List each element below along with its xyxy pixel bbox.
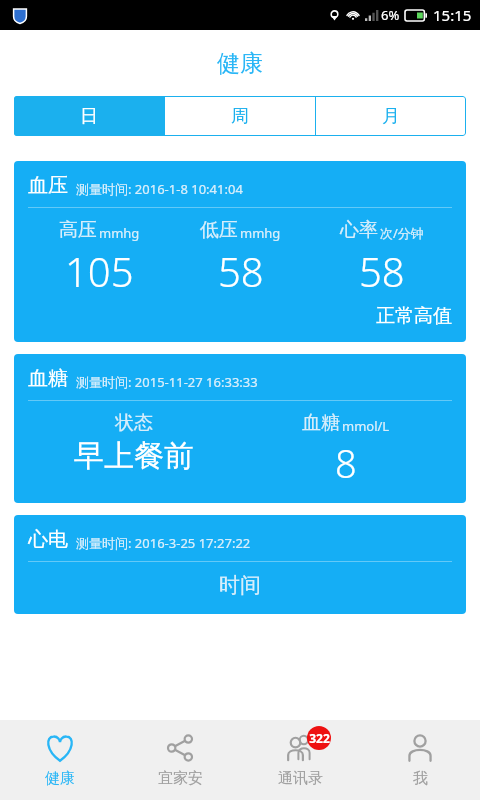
button[interactable]: 健康: [0, 720, 120, 800]
staticText: 105: [65, 244, 134, 298]
button[interactable]: 宜家安: [120, 720, 240, 800]
button[interactable]: 血糖: [14, 354, 466, 503]
staticText: 测量时间: 2016-1-8 10:41:04: [76, 180, 243, 198]
button[interactable]: 心电: [14, 515, 466, 614]
staticText: 健康: [217, 49, 263, 78]
staticText: mmhg: [99, 224, 140, 242]
staticText: 测量时间: 2015-11-27 16:33:33: [76, 373, 258, 391]
staticText: 次/分钟: [380, 224, 424, 242]
staticText: 早上餐前: [74, 437, 194, 475]
staticText: 58: [359, 244, 405, 298]
staticText: 58: [218, 244, 264, 298]
staticText: 状态: [115, 411, 153, 435]
staticText: 血糖: [302, 411, 340, 435]
button[interactable]: 血压: [14, 161, 466, 342]
staticText: 周: [231, 105, 249, 128]
staticText: 心电: [28, 527, 68, 552]
button[interactable]: 日: [14, 96, 164, 136]
staticText: 测量时间: 2016-3-25 17:27:22: [76, 534, 251, 552]
button[interactable]: 周: [165, 96, 315, 136]
staticText: 正常高值: [376, 304, 452, 328]
staticText: 宜家安: [158, 769, 203, 788]
staticText: 6%: [381, 6, 400, 24]
staticText: mmol/L: [342, 417, 390, 435]
staticText: 血压: [28, 173, 68, 198]
button[interactable]: 月: [316, 96, 466, 136]
staticText: 322: [309, 730, 330, 746]
staticText: 高压: [59, 218, 97, 242]
staticText: 低压: [200, 218, 238, 242]
staticText: 日: [80, 105, 98, 128]
staticText: 通讯录: [278, 769, 323, 788]
staticText: 我: [413, 769, 428, 788]
staticText: 血糖: [28, 366, 68, 391]
staticText: mmhg: [240, 224, 281, 242]
staticText: 时间: [219, 572, 261, 598]
button[interactable]: 通讯录: [240, 720, 360, 800]
staticText: 健康: [45, 769, 75, 788]
staticText: 15:15: [433, 5, 472, 25]
staticText: 8: [335, 437, 357, 489]
staticText: 心率: [340, 218, 378, 242]
button[interactable]: 我: [360, 720, 480, 800]
staticText: 月: [382, 105, 400, 128]
